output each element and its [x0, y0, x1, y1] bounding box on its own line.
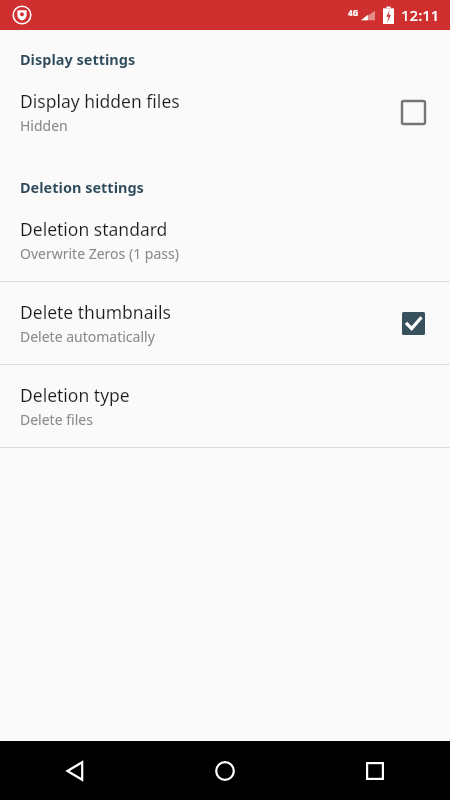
button[interactable]: Recent apps: [300, 741, 450, 800]
staticText: Display hidden files: [20, 89, 180, 113]
button[interactable]: Deletion standard: [0, 199, 450, 281]
button[interactable]: Unchecked: [396, 95, 430, 129]
staticText: 12:11: [401, 5, 440, 25]
staticText: Deletion standard: [20, 217, 168, 241]
staticText: Overwrite Zeros (1 pass): [20, 244, 179, 263]
staticText: Delete files: [20, 410, 93, 429]
button[interactable]: Checked: [396, 306, 430, 340]
staticText: Hidden: [20, 116, 68, 135]
staticText: Display settings: [20, 49, 136, 69]
button[interactable]: Home: [150, 741, 300, 800]
staticText: Deletion settings: [20, 177, 144, 197]
staticText: 4G: [348, 7, 359, 18]
staticText: Delete thumbnails: [20, 300, 171, 324]
button[interactable]: Display hidden files: [0, 71, 450, 153]
button[interactable]: Delete thumbnails: [0, 282, 450, 364]
other: App notification: [12, 5, 32, 25]
staticText: Delete automatically: [20, 327, 155, 346]
button[interactable]: Back: [0, 741, 150, 800]
button[interactable]: Deletion type: [0, 365, 450, 447]
staticText: Deletion type: [20, 383, 130, 407]
